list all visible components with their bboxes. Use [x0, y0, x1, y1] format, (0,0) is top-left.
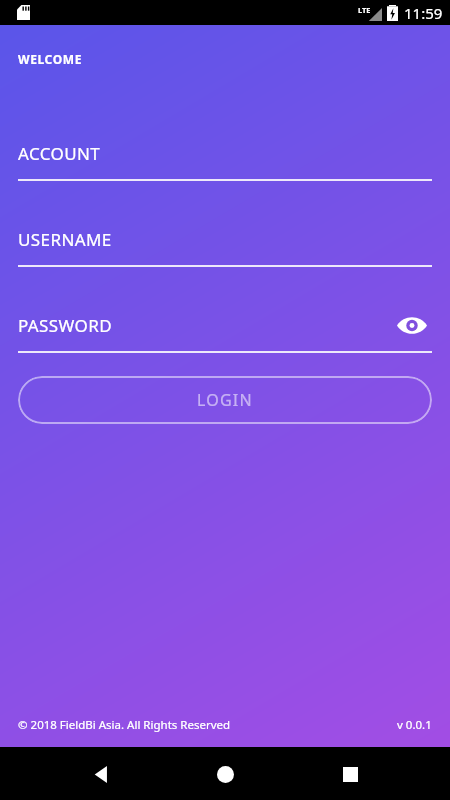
button[interactable]: LOGIN	[18, 376, 432, 424]
button[interactable]: ACCOUNT	[18, 133, 432, 173]
staticText: USERNAME	[18, 228, 112, 251]
staticText: 11:59	[404, 3, 443, 23]
staticText: LOGIN	[197, 389, 253, 411]
staticText: LTE	[358, 5, 371, 15]
button[interactable]: Recent apps	[326, 750, 374, 798]
button[interactable]: Home	[201, 750, 249, 798]
button[interactable]: Back	[77, 750, 125, 798]
button[interactable]: PASSWORD	[18, 305, 432, 345]
staticText: WELCOME	[18, 51, 82, 67]
staticText: v 0.0.1	[397, 717, 432, 733]
button[interactable]: Show password	[392, 305, 432, 345]
staticText: ACCOUNT	[18, 142, 101, 165]
staticText: PASSWORD	[18, 314, 113, 337]
staticText: © 2018 FieldBi Asia. All Rights Reserved	[18, 717, 231, 733]
button[interactable]: USERNAME	[18, 219, 432, 259]
